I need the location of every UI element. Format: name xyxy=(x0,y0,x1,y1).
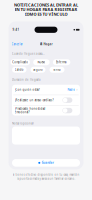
staticText: Tenso xyxy=(53,68,61,71)
staticText: Cuando llegues a casa... xyxy=(12,52,45,55)
button[interactable]: Calido xyxy=(12,67,26,73)
staticText: ¿Con quién estás? xyxy=(15,88,40,91)
button[interactable]: Nuevo xyxy=(33,59,50,65)
staticText: Nuevo xyxy=(37,60,45,64)
staticText: la puerta cerrada y avisa a un familiar … xyxy=(16,177,75,180)
staticText: COMO ES TU VÍNCULO xyxy=(24,12,67,17)
staticText: Mi Hogar xyxy=(39,42,52,46)
button[interactable]: Enfermo xyxy=(53,59,70,65)
staticText: Cancelar xyxy=(11,42,22,46)
staticText: ¿Realizaste un atraso cardíaco? xyxy=(15,98,54,102)
staticText: Guardar xyxy=(42,161,54,165)
staticText: emocional? xyxy=(15,110,30,114)
staticText: › xyxy=(75,88,77,91)
staticText: Nadie xyxy=(67,88,75,91)
button[interactable]: ¿Practicaste honestidad xyxy=(12,105,80,115)
button[interactable]: ¿Con quién estás? xyxy=(12,85,80,95)
button[interactable]: Guardar xyxy=(12,159,80,167)
staticText: Seguro xyxy=(33,68,43,71)
button[interactable]: Seguro xyxy=(30,67,45,73)
staticText: Calido xyxy=(15,68,24,71)
staticText: 9:41 xyxy=(12,28,19,31)
button[interactable]: Complicado xyxy=(10,59,30,65)
staticText: Notas (opcional) xyxy=(12,122,34,125)
staticText: Complicado xyxy=(12,60,28,64)
button[interactable]: Tenso xyxy=(49,67,64,73)
button[interactable]: Cancelar xyxy=(11,42,22,46)
button[interactable]: ¿Realizaste un atraso cardíaco? xyxy=(12,95,80,105)
staticText: NOTIFICACIONES AL ENTRAR AL xyxy=(14,2,78,7)
staticText: Si tienes efectivo disponible en tu casa… xyxy=(12,173,79,176)
staticText: Enfermo xyxy=(56,60,67,64)
staticText: Duración de llegada xyxy=(12,78,40,81)
staticText: ¿Practicaste honestidad xyxy=(15,107,46,110)
staticText: EN TU HOGAR PARA REGISTRAR xyxy=(14,7,77,12)
